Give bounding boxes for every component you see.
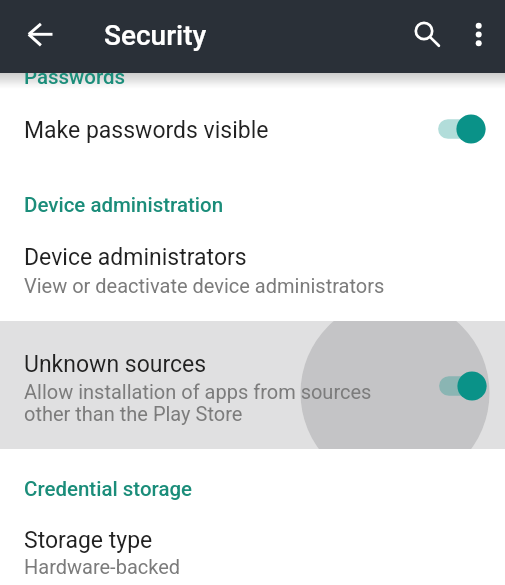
button[interactable]: Device administrators bbox=[0, 232, 505, 300]
staticText: Passwords bbox=[24, 65, 126, 89]
staticText: Device administrators bbox=[24, 244, 247, 271]
button[interactable]: Navigate up bbox=[16, 11, 64, 59]
button[interactable]: Make passwords visible bbox=[0, 100, 505, 157]
button[interactable]: Storage type bbox=[0, 515, 505, 585]
button[interactable]: More options bbox=[455, 11, 503, 59]
staticText: Storage type bbox=[24, 527, 153, 554]
staticText: Security bbox=[104, 19, 207, 52]
staticText: Device administration bbox=[24, 193, 224, 217]
staticText: Unknown sources bbox=[24, 351, 207, 378]
button[interactable]: Search bbox=[400, 7, 448, 55]
button[interactable]: Unknown sources bbox=[0, 321, 505, 449]
staticText: Allow installation of apps from sources … bbox=[24, 380, 372, 426]
staticText: Make passwords visible bbox=[24, 117, 269, 144]
staticText: Credential storage bbox=[24, 477, 193, 501]
staticText: View or deactivate device administrators bbox=[24, 274, 385, 297]
staticText: Hardware-backed bbox=[24, 555, 181, 578]
